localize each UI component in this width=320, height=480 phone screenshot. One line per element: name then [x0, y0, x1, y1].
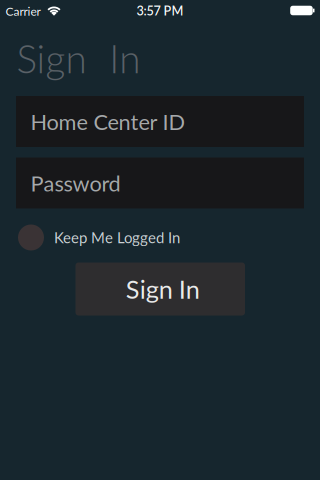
button[interactable]: Keep Me Logged In	[18, 224, 180, 250]
staticText: Keep Me Logged In	[54, 228, 180, 246]
button[interactable]: Sign In	[75, 262, 245, 315]
button[interactable]: Password	[16, 157, 304, 208]
staticText: Home Center ID	[30, 108, 185, 135]
staticText: Sign In	[126, 274, 200, 304]
staticText: 3:57 PM	[136, 3, 183, 18]
staticText: Password	[30, 170, 120, 196]
staticText: In	[109, 35, 140, 82]
button[interactable]: Home Center ID	[16, 96, 304, 147]
staticText: Sign	[16, 35, 86, 82]
staticText: Carrier	[5, 4, 40, 18]
